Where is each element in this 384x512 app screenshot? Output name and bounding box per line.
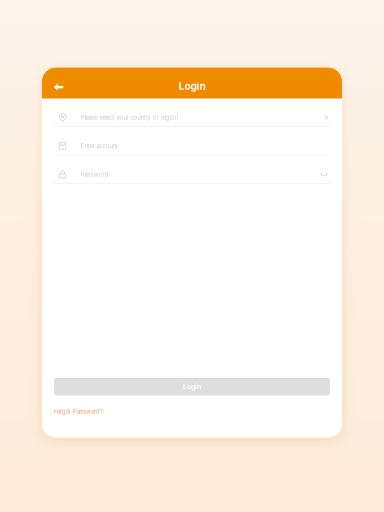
staticText: Forgot Password? <box>54 408 103 415</box>
button[interactable]: Login <box>54 378 330 396</box>
staticText: Please select your country or region <box>80 114 177 121</box>
staticText: Login <box>183 383 201 391</box>
button[interactable]: Back <box>42 79 80 96</box>
staticText: Enter account <box>80 142 117 150</box>
staticText: Login <box>178 80 205 92</box>
staticText: Password <box>80 171 108 178</box>
button[interactable]: Please select your country or region <box>42 109 342 137</box>
button[interactable]: Forgot Password? <box>42 405 342 418</box>
button[interactable]: Password <box>42 166 342 194</box>
button[interactable]: Enter account <box>42 137 342 166</box>
